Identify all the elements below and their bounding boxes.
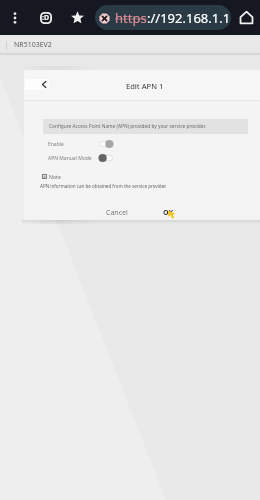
staticText: OK bbox=[163, 208, 174, 218]
button[interactable]: Cancel bbox=[104, 206, 130, 220]
button[interactable]: More options bbox=[0, 0, 30, 35]
staticText: APN Manual Mode bbox=[48, 155, 92, 162]
button[interactable]: APN Manual Mode bbox=[24, 151, 260, 165]
button[interactable]: Home bbox=[234, 0, 258, 35]
staticText: :D bbox=[42, 13, 50, 23]
button[interactable]: https bbox=[95, 5, 231, 30]
button[interactable]: Bookmarks bbox=[66, 0, 89, 35]
staticText: Configure Access Point Name (APN) provid… bbox=[49, 123, 206, 130]
staticText: Note bbox=[49, 173, 61, 180]
staticText: Edit APN 1 bbox=[126, 81, 164, 91]
staticText: https bbox=[115, 9, 147, 27]
staticText: ://192.168.1.1 bbox=[147, 9, 231, 27]
button[interactable]: OK bbox=[158, 206, 178, 220]
staticText: NR5103EV2 bbox=[14, 40, 52, 50]
button[interactable]: Enable bbox=[24, 137, 260, 151]
button[interactable]: Back bbox=[25, 79, 49, 90]
staticText: Enable bbox=[48, 141, 64, 148]
staticText: Cancel bbox=[106, 208, 128, 218]
button[interactable]: Profile bbox=[34, 0, 57, 35]
staticText: APN information can be obtained from the… bbox=[40, 183, 167, 189]
